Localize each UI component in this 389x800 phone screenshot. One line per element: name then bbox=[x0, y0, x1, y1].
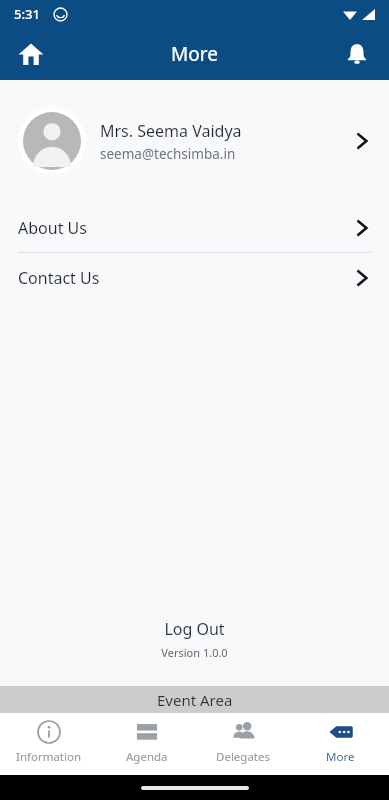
staticText: Log Out bbox=[164, 618, 225, 640]
staticText: About Us bbox=[18, 217, 351, 239]
staticText: Version 1.0.0 bbox=[161, 645, 228, 660]
staticText: Contact Us bbox=[18, 267, 351, 289]
staticText: seema@techsimba.in bbox=[100, 145, 236, 163]
staticText: Event Area bbox=[157, 690, 233, 710]
button[interactable]: Contact Us bbox=[0, 253, 389, 302]
button[interactable]: Home bbox=[8, 31, 54, 77]
button[interactable]: Notifications bbox=[335, 32, 379, 76]
staticText: More bbox=[171, 41, 218, 67]
staticText: Mrs. Seema Vaidya bbox=[100, 120, 242, 142]
staticText: Delegates bbox=[216, 749, 271, 765]
button[interactable]: About Us bbox=[0, 203, 389, 252]
button[interactable]: Agenda bbox=[98, 713, 195, 775]
button[interactable]: Delegates bbox=[195, 713, 292, 775]
staticText: 5:31 bbox=[14, 5, 40, 23]
staticText: Information bbox=[16, 749, 82, 765]
staticText: Agenda bbox=[126, 749, 168, 765]
button[interactable]: Log Out bbox=[150, 616, 239, 642]
staticText: More bbox=[326, 749, 355, 765]
button[interactable]: Mrs. Seema Vaidya bbox=[0, 95, 389, 187]
button[interactable]: More bbox=[292, 713, 389, 775]
button[interactable]: Information bbox=[0, 713, 98, 775]
